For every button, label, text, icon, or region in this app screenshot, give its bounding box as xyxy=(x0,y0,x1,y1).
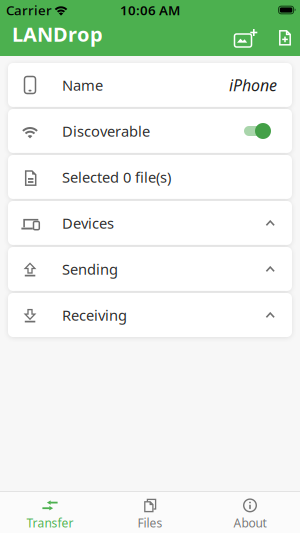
button[interactable]: Add photos xyxy=(234,20,258,56)
staticText: Name xyxy=(62,75,103,95)
staticText: Files xyxy=(137,515,162,531)
staticText: 10:06 AM xyxy=(120,1,180,19)
staticText: iPhone xyxy=(229,74,277,96)
staticText: About xyxy=(233,515,266,531)
staticText: Carrier xyxy=(6,1,52,19)
staticText: Receiving xyxy=(62,305,127,325)
staticText: Devices xyxy=(62,213,114,233)
staticText: Transfer xyxy=(26,515,73,531)
button[interactable]: Files xyxy=(100,492,200,533)
button[interactable]: About xyxy=(200,492,300,533)
button[interactable]: Discoverable xyxy=(244,122,292,140)
staticText: LANDrop xyxy=(12,21,103,47)
staticText: Selected 0 file(s) xyxy=(62,167,171,187)
button[interactable]: Selected 0 file(s) xyxy=(8,155,292,199)
button[interactable]: Receiving xyxy=(8,293,292,337)
staticText: Sending xyxy=(62,259,118,279)
button[interactable]: Transfer xyxy=(0,492,100,533)
staticText: Discoverable xyxy=(62,121,150,141)
button[interactable]: Devices xyxy=(8,201,292,245)
button[interactable]: Sending xyxy=(8,247,292,291)
button[interactable]: Add files xyxy=(258,20,300,56)
